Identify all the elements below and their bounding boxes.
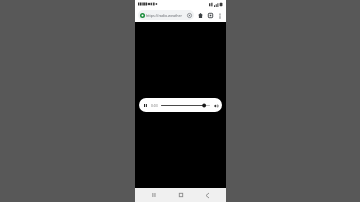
button[interactable]: Recent apps: [146, 188, 162, 202]
button[interactable]: Page info: [186, 12, 192, 18]
button[interactable]: More options: [216, 12, 223, 19]
button[interactable]: Back: [199, 188, 215, 202]
button[interactable]: https://radio.weather: [138, 10, 194, 20]
button[interactable]: Seek bar: [161, 102, 210, 109]
staticText: https://radio.weather: [146, 13, 182, 18]
button[interactable]: Home: [173, 188, 189, 202]
button[interactable]: Switch tabs: [206, 11, 214, 19]
button[interactable]: Volume: [212, 102, 219, 109]
staticText: 0:03: [151, 103, 158, 108]
button[interactable]: Home: [196, 11, 204, 19]
button[interactable]: Play: [139, 98, 222, 112]
button[interactable]: Play: [142, 102, 149, 109]
